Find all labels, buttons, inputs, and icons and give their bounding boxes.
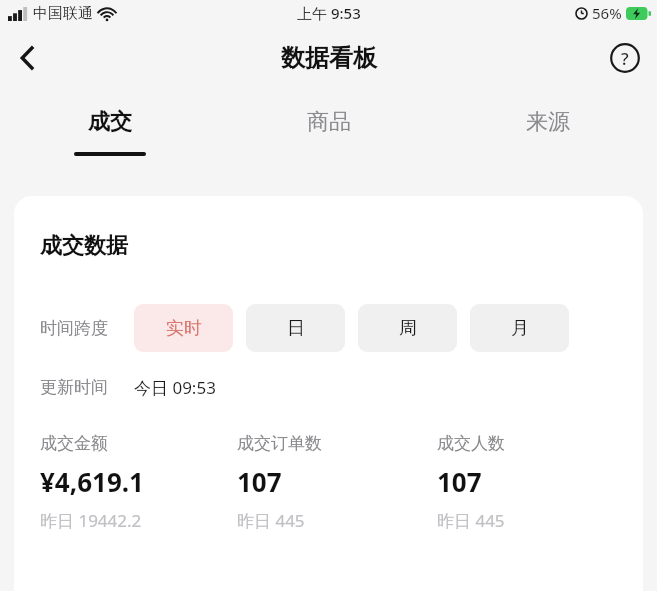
button[interactable]: 月	[470, 304, 569, 352]
staticText: 日	[287, 317, 305, 340]
staticText: 月	[511, 317, 529, 340]
staticText: 56%	[592, 3, 622, 23]
staticText: 107	[437, 464, 482, 499]
staticText: 数据看板	[281, 43, 377, 73]
button[interactable]: 实时	[134, 304, 233, 352]
staticText: 昨日 445	[437, 509, 505, 532]
staticText: 今日 09:53	[134, 376, 216, 399]
button[interactable]: 来源	[438, 90, 657, 182]
button[interactable]: 成交	[0, 90, 219, 182]
staticText: 来源	[526, 108, 570, 136]
staticText: 中国联通	[33, 4, 93, 23]
staticText: 实时	[166, 317, 202, 340]
staticText: ¥4,619.1	[40, 464, 144, 499]
staticText: 昨日 445	[237, 509, 305, 532]
staticText: 周	[399, 317, 417, 340]
button[interactable]: Back	[0, 30, 56, 86]
staticText: 上午 9:53	[297, 3, 361, 23]
button[interactable]: 商品	[219, 90, 438, 182]
button[interactable]: 日	[246, 304, 345, 352]
staticText: 昨日 19442.2	[40, 509, 142, 532]
staticText: 107	[237, 464, 282, 499]
staticText: 成交数据	[40, 232, 128, 260]
staticText: 成交金额	[40, 433, 108, 454]
staticText: 成交订单数	[237, 433, 322, 454]
button[interactable]: 周	[358, 304, 457, 352]
staticText: 时间跨度	[40, 318, 108, 339]
staticText: 成交人数	[437, 433, 505, 454]
staticText: ?	[621, 47, 629, 70]
staticText: 成交	[88, 108, 132, 136]
button[interactable]: Help	[603, 36, 647, 80]
staticText: 更新时间	[40, 377, 108, 398]
staticText: 商品	[307, 108, 351, 136]
